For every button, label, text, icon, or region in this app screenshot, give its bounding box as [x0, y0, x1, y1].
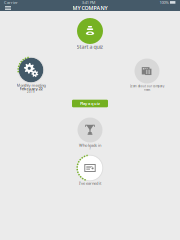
staticText: Who leads in	[79, 142, 101, 148]
staticText: MY COMPANY	[72, 4, 107, 12]
button[interactable]: Learn about our company	[130, 58, 164, 91]
staticText: Learn about our company	[130, 84, 164, 88]
staticText: I've earned it	[79, 180, 101, 186]
staticText: Monthly meeting	[16, 82, 45, 88]
button[interactable]: Start a quiz	[64, 18, 116, 48]
staticText: Play a quiz	[80, 101, 100, 106]
button[interactable]: Who leads in	[70, 117, 110, 150]
button[interactable]: I've earned it	[70, 155, 110, 185]
staticText: 100%	[159, 0, 168, 5]
staticText: February 22	[19, 86, 42, 91]
staticText: Carrier	[4, 0, 18, 5]
staticText: news	[144, 88, 150, 91]
button[interactable]: Play a quiz	[72, 100, 108, 107]
staticText: 3:41 PM	[82, 0, 96, 5]
button[interactable]: Menu	[3, 4, 13, 12]
staticText: Start a quiz	[76, 43, 103, 50]
staticText: 2019	[27, 90, 35, 94]
button[interactable]: Monthly meeting	[9, 57, 53, 94]
